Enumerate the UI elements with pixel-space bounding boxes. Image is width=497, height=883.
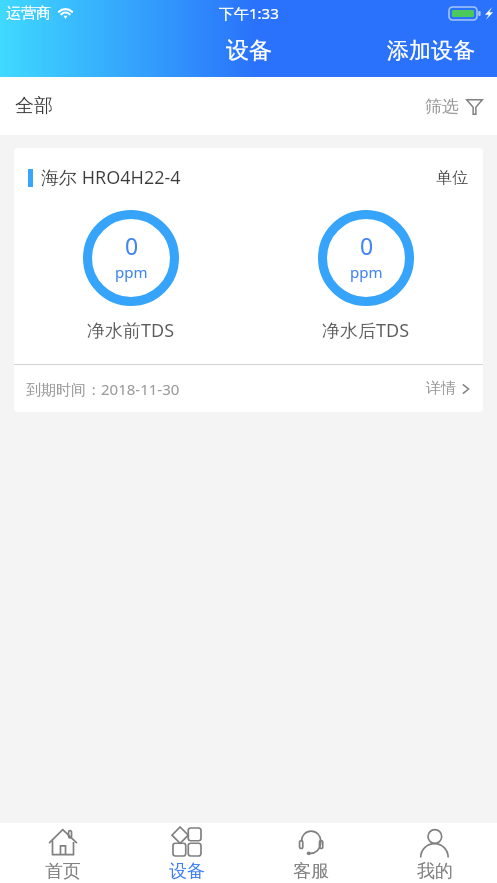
staticText: 客服 xyxy=(293,860,329,883)
staticText: ppm xyxy=(350,262,383,282)
staticText: 首页 xyxy=(45,860,81,883)
button[interactable]: 设备 xyxy=(125,823,249,883)
staticText: ppm xyxy=(115,262,148,282)
button[interactable]: 我的 xyxy=(373,823,497,883)
button[interactable]: 添加设备 xyxy=(363,31,497,71)
staticText: 0 xyxy=(360,230,374,261)
staticText: 设备 xyxy=(169,860,205,883)
staticText: 净水前TDS xyxy=(87,318,175,343)
staticText: 净水后TDS xyxy=(322,318,410,343)
button[interactable]: 筛选 xyxy=(409,86,497,127)
staticText: 下午1:33 xyxy=(219,3,279,23)
staticText: 全部 xyxy=(15,94,53,118)
button[interactable]: 海尔 HRO4H22-4 xyxy=(14,148,483,412)
staticText: 我的 xyxy=(417,860,453,883)
staticText: 设备 xyxy=(226,36,272,65)
staticText: 添加设备 xyxy=(387,37,475,65)
staticText: 到期时间：2018-11-30 xyxy=(26,379,180,399)
staticText: 单位 xyxy=(436,168,468,188)
staticText: 0 xyxy=(125,230,139,261)
staticText: 详情 xyxy=(426,379,456,398)
staticText: 海尔 HRO4H22-4 xyxy=(41,165,181,190)
button[interactable]: 客服 xyxy=(249,823,373,883)
staticText: 筛选 xyxy=(425,96,459,117)
button[interactable]: 首页 xyxy=(0,823,125,883)
staticText: 运营商 xyxy=(6,4,51,23)
